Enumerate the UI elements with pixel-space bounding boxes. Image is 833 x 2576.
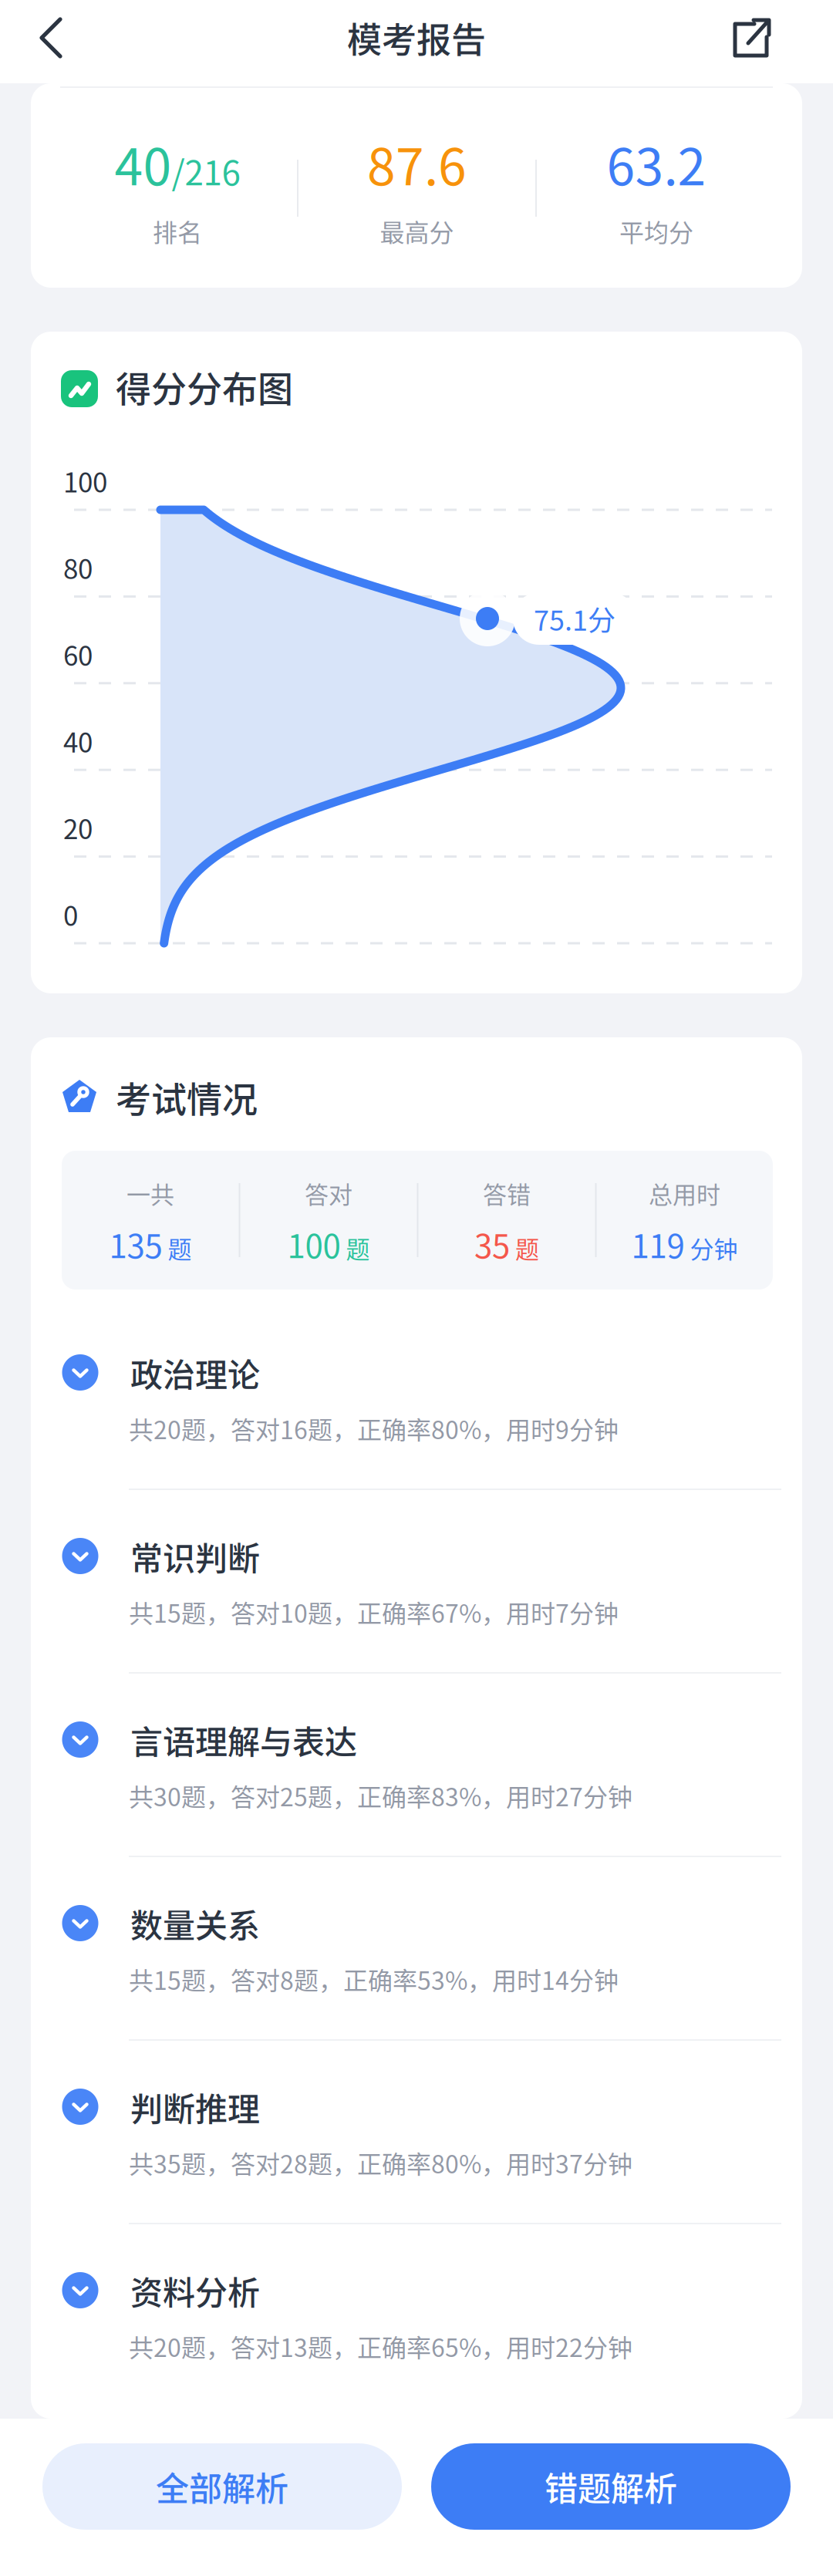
button[interactable]: 全部解析 xyxy=(42,2443,402,2530)
staticText: 35 xyxy=(474,1221,510,1267)
button[interactable]: 返回 xyxy=(17,4,85,72)
staticText: 40 xyxy=(63,721,93,760)
staticText: 常识判断 xyxy=(130,1533,260,1580)
staticText: 共20题，答对16题，正确率80%，用时9分钟 xyxy=(129,1410,619,1446)
button[interactable]: 判断推理 xyxy=(62,2072,771,2256)
staticText: 135 xyxy=(109,1221,162,1267)
staticText: 错题解析 xyxy=(545,2463,677,2511)
staticText: 题 xyxy=(515,1230,539,1265)
staticText: 分钟 xyxy=(690,1230,738,1265)
staticText: 共30题，答对25题，正确率83%，用时27分钟 xyxy=(129,1778,632,1813)
button[interactable]: 言语理解与表达 xyxy=(62,1705,771,1889)
button[interactable]: 错题解析 xyxy=(431,2443,791,2530)
staticText: 共15题，答对8题，正确率53%，用时14分钟 xyxy=(129,1961,619,1997)
staticText: 87.6 xyxy=(367,126,467,200)
staticText: 题 xyxy=(346,1230,370,1265)
staticText: 总用时 xyxy=(649,1176,720,1210)
staticText: 100 xyxy=(63,461,107,500)
staticText: 排名 xyxy=(153,213,202,249)
staticText: 63.2 xyxy=(607,126,706,200)
staticText: /216 xyxy=(172,146,240,195)
staticText: 全部解析 xyxy=(156,2463,288,2511)
staticText: 119 xyxy=(631,1221,685,1267)
staticText: 100 xyxy=(287,1221,341,1267)
button[interactable]: 常识判断 xyxy=(62,1522,771,1705)
button[interactable]: 资料分析 xyxy=(62,2256,771,2439)
staticText: 判断推理 xyxy=(130,2084,260,2131)
staticText: 75.1分 xyxy=(534,598,615,639)
staticText: 共35题，答对28题，正确率80%，用时37分钟 xyxy=(129,2145,632,2180)
staticText: 20 xyxy=(63,808,93,847)
staticText: 一共 xyxy=(126,1176,174,1210)
staticText: 得分分布图 xyxy=(116,361,293,412)
staticText: 题 xyxy=(168,1230,192,1265)
button[interactable]: 政治理论 xyxy=(62,1338,771,1522)
button[interactable]: 分享 xyxy=(719,4,787,72)
staticText: 60 xyxy=(63,635,93,674)
staticText: 0 xyxy=(63,895,78,934)
staticText: 资料分析 xyxy=(130,2267,260,2314)
staticText: 共20题，答对13题，正确率65%，用时22分钟 xyxy=(129,2328,632,2364)
staticText: 言语理解与表达 xyxy=(130,1717,357,1763)
staticText: 平均分 xyxy=(619,213,693,249)
staticText: 共15题，答对10题，正确率67%，用时7分钟 xyxy=(129,1594,619,1630)
staticText: 模考报告 xyxy=(347,13,486,63)
staticText: 最高分 xyxy=(380,213,454,249)
staticText: 80 xyxy=(63,548,93,587)
staticText: 考试情况 xyxy=(116,1071,258,1122)
staticText: 政治理论 xyxy=(130,1349,260,1396)
staticText: 答错 xyxy=(483,1176,531,1210)
staticText: 数量关系 xyxy=(130,1900,260,1947)
staticText: 40 xyxy=(115,126,172,200)
staticText: 答对 xyxy=(305,1176,352,1210)
button[interactable]: 数量关系 xyxy=(62,1889,771,2072)
